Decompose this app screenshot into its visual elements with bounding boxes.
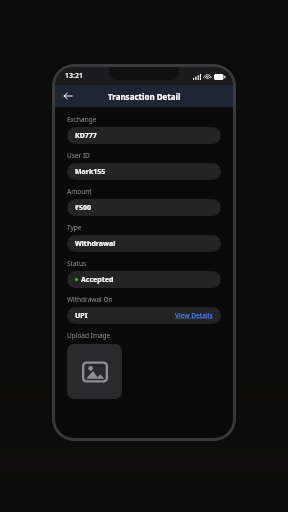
staticText: Type [67,223,82,232]
button[interactable]: UPI [67,307,221,324]
button[interactable]: Accepted [67,271,221,288]
staticText: Withdrawal [75,239,116,249]
button[interactable]: View Details [175,311,213,320]
staticText: Status [67,259,87,268]
button[interactable]: KD777 [67,127,221,144]
button[interactable]: Upload image [67,344,122,399]
staticText: KD777 [75,131,97,141]
staticText: Amount [67,187,92,196]
staticText: 13:21 [65,71,83,81]
staticText: Upload Image [67,331,111,340]
staticText: Exchange [67,115,97,124]
staticText: View Details [175,311,213,320]
staticText: UPI [75,311,88,321]
staticText: Mark155 [75,167,106,177]
button[interactable]: Mark155 [67,163,221,180]
staticText: User ID [67,151,90,160]
button[interactable]: Withdrawal [67,235,221,252]
staticText: Accepted [81,275,114,285]
button[interactable]: Back [60,88,76,104]
staticText: Transaction Detail [108,91,181,102]
staticText: ₹500 [75,203,92,213]
staticText: Withdrawal On [67,295,113,304]
button[interactable]: ₹500 [67,199,221,216]
